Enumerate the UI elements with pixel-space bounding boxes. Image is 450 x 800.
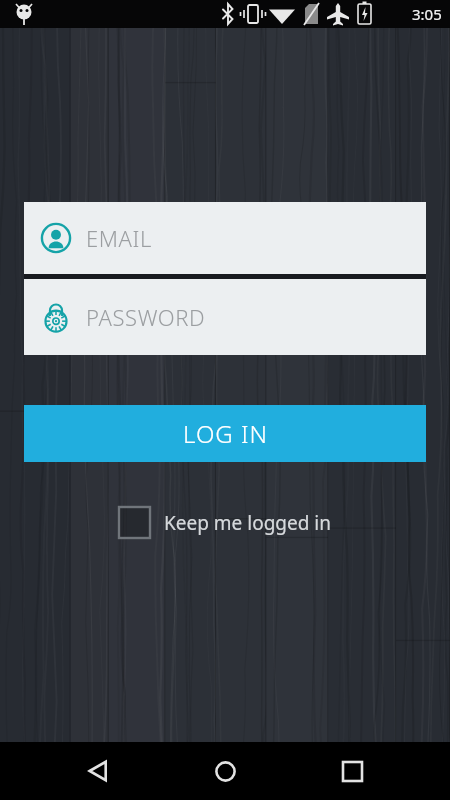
button[interactable]: Password xyxy=(24,279,426,355)
button[interactable]: Email xyxy=(24,202,426,274)
staticText: 3:05 xyxy=(412,4,442,24)
other: Password xyxy=(40,301,72,333)
button[interactable]: LOG IN xyxy=(24,405,426,462)
button[interactable]: Home xyxy=(196,742,254,800)
staticText: Keep me logged in xyxy=(164,510,331,536)
staticText: LOG IN xyxy=(183,417,268,450)
button[interactable]: Keep me logged in xyxy=(119,507,331,538)
staticText: EMAIL xyxy=(86,223,152,253)
staticText: PASSWORD xyxy=(86,302,206,332)
button[interactable]: Recents xyxy=(323,742,381,800)
button[interactable]: Back xyxy=(69,742,127,800)
other: Email xyxy=(40,222,72,254)
